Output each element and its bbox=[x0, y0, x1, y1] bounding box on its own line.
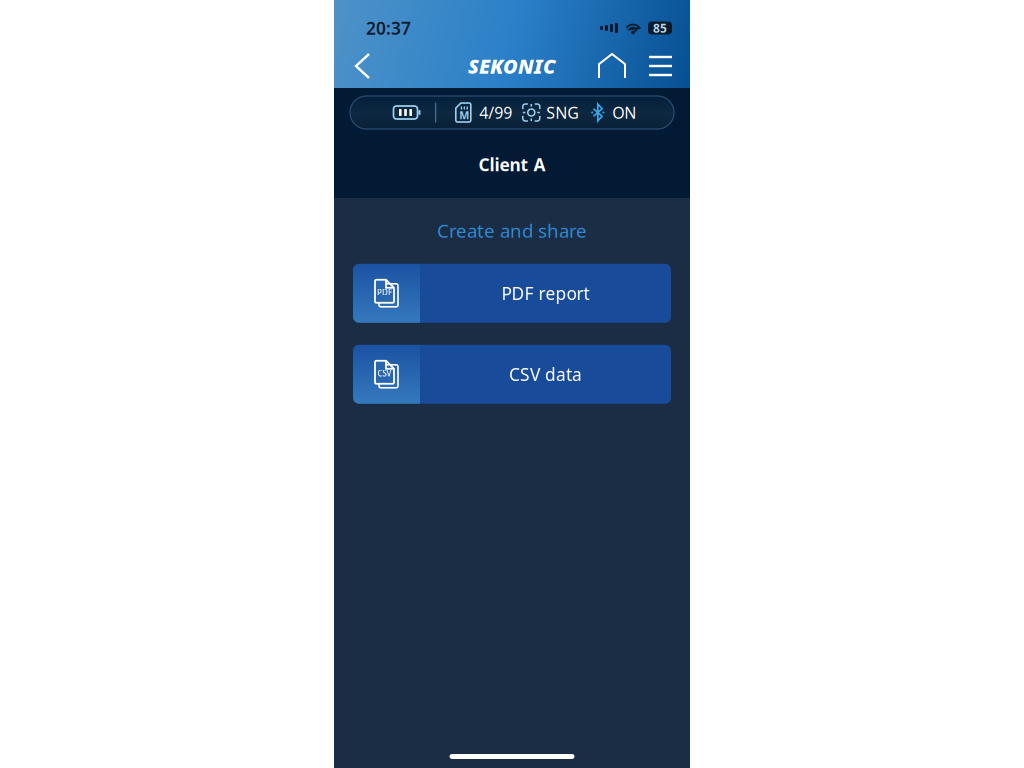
staticText: 4/99 bbox=[479, 102, 512, 123]
button[interactable]: CSV bbox=[353, 345, 671, 404]
staticText: SNG bbox=[546, 102, 579, 123]
staticText: 85 bbox=[653, 20, 667, 36]
staticText: SEKONIC bbox=[468, 53, 556, 79]
button[interactable]: Menu bbox=[640, 48, 681, 84]
button[interactable]: Back bbox=[346, 44, 379, 88]
staticText: CSV bbox=[377, 368, 391, 379]
staticText: CSV data bbox=[509, 363, 582, 386]
staticText: ON bbox=[612, 102, 636, 123]
staticText: M bbox=[459, 108, 469, 122]
staticText: Create and share bbox=[437, 218, 587, 243]
staticText: Client A bbox=[478, 153, 545, 176]
staticText: PDF report bbox=[501, 282, 589, 305]
button[interactable]: PDF bbox=[353, 264, 671, 323]
staticText: 20:37 bbox=[366, 16, 411, 39]
button[interactable]: Home bbox=[591, 46, 633, 86]
staticText: PDF bbox=[377, 287, 392, 298]
